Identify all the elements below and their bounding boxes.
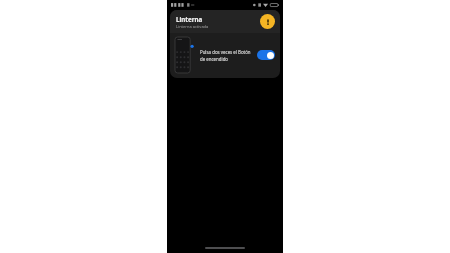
staticText: de encendido: [200, 56, 228, 62]
staticText: Linterna activada: [176, 24, 209, 29]
staticText: Linterna: [176, 15, 203, 23]
button[interactable]: Activar linterna: [257, 50, 275, 60]
button[interactable]: Pulsa dos veces el Botón: [175, 37, 275, 73]
button[interactable]: Información: [260, 14, 275, 29]
staticText: Pulsa dos veces el Botón: [200, 49, 251, 55]
